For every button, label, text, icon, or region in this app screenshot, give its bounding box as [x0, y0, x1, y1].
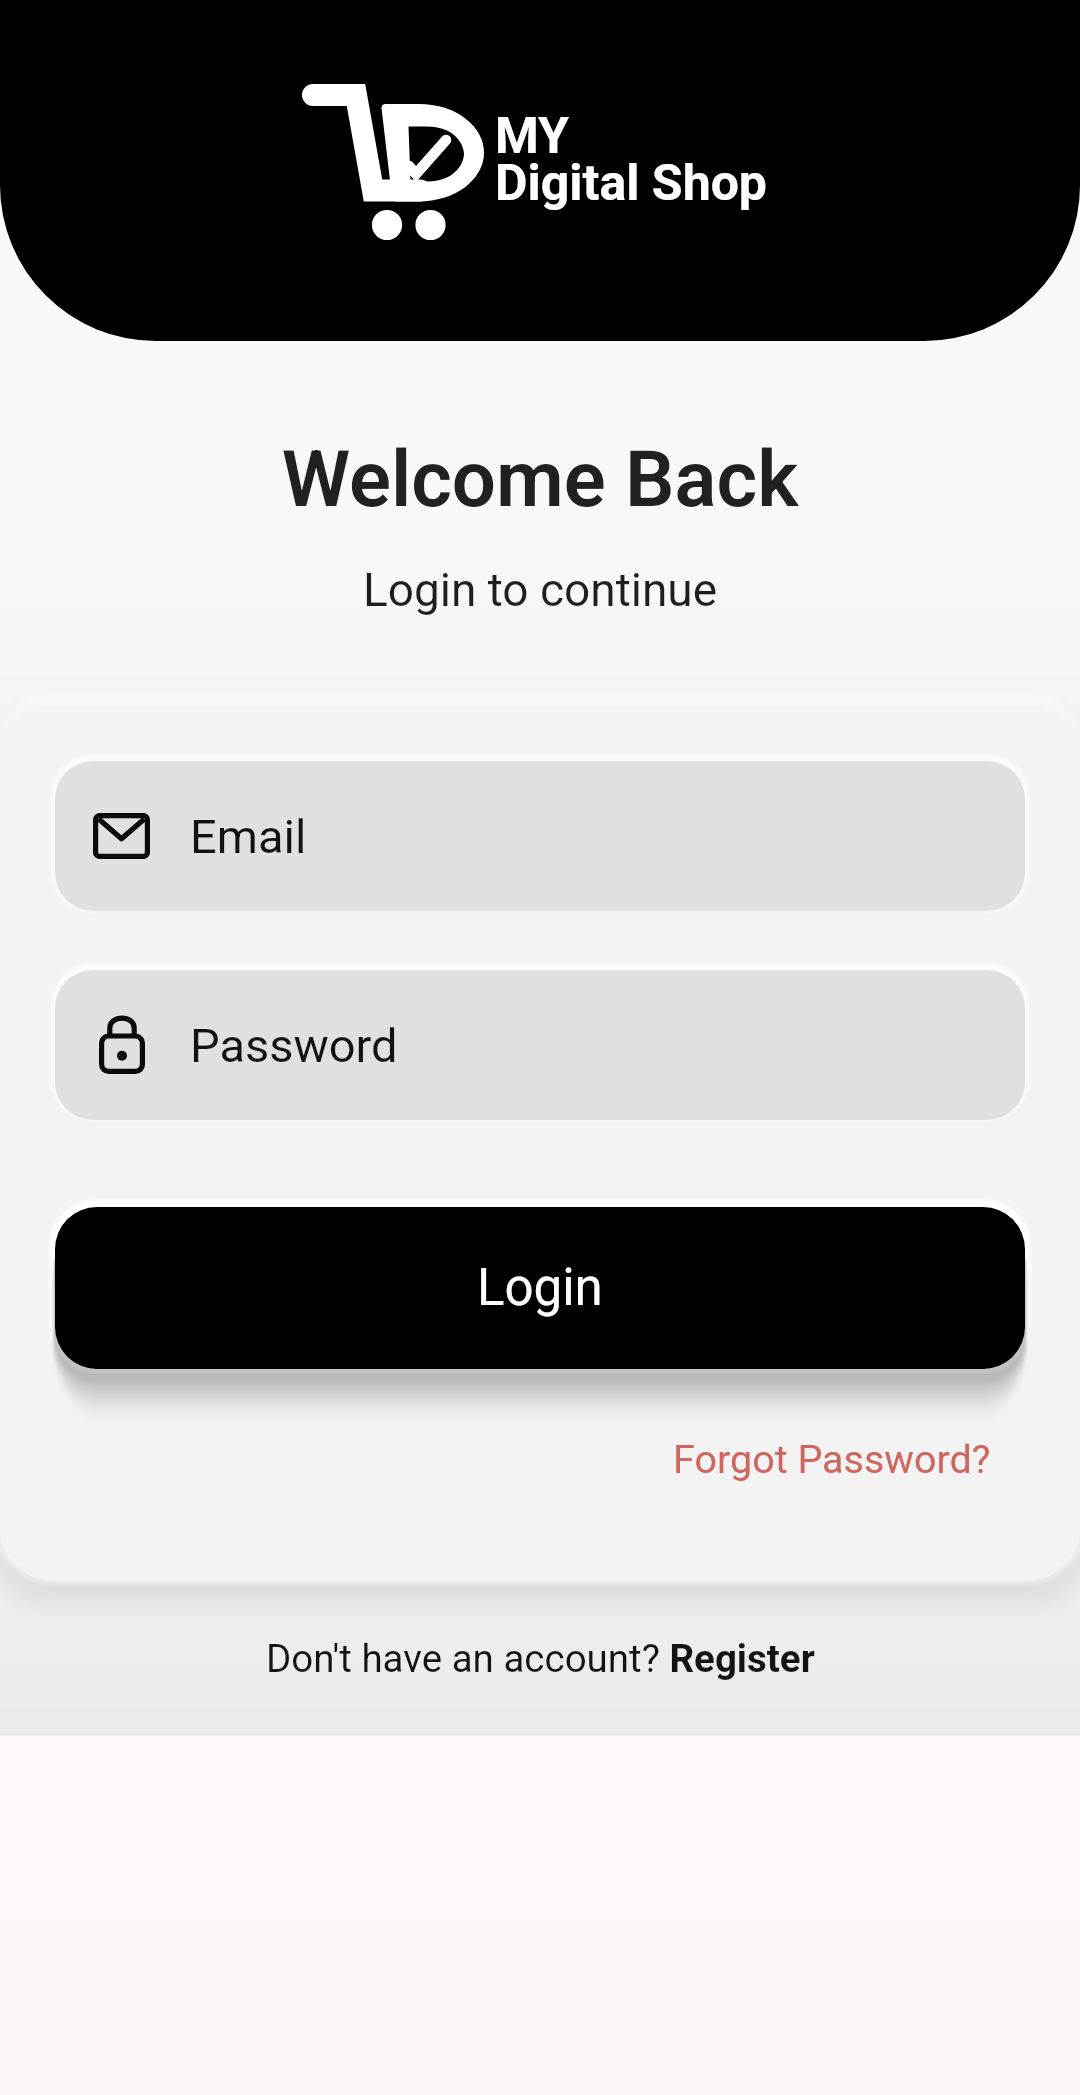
staticText: Login to continue — [0, 563, 1080, 617]
staticText: Login — [477, 1258, 603, 1318]
button[interactable]: Don't have an account? Register — [256, 1628, 825, 1689]
button[interactable]: Forgot Password? — [665, 1428, 999, 1490]
staticText: MY Digital Shop — [495, 107, 767, 212]
staticText: Don't have an account? Register — [266, 1636, 815, 1681]
button[interactable]: Login — [55, 1207, 1025, 1369]
button[interactable]: Password — [55, 970, 1025, 1120]
other: My Digital Shop logo — [302, 84, 484, 242]
button[interactable]: Email — [55, 761, 1025, 911]
staticText: Welcome Back — [0, 434, 1080, 525]
staticText: Password — [190, 1018, 398, 1073]
staticText: Forgot Password? — [673, 1436, 991, 1482]
staticText: Email — [190, 809, 307, 864]
